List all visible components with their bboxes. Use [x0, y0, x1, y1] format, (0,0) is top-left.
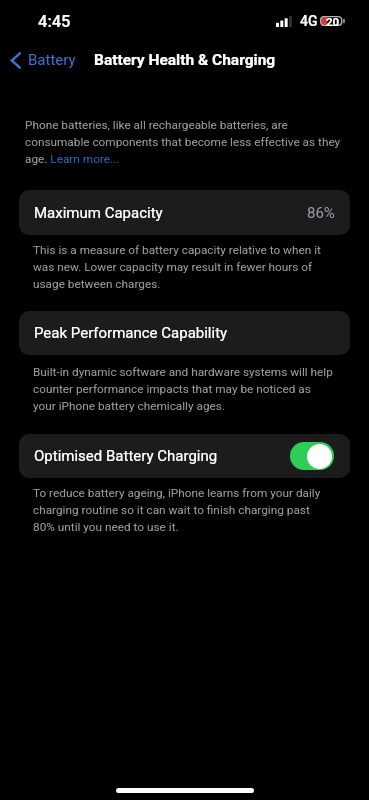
- button[interactable]: Optimised Battery Charging: [290, 442, 334, 470]
- staticText: Optimised Battery Charging: [34, 447, 218, 465]
- button[interactable]: Maximum Capacity: [19, 190, 350, 235]
- button[interactable]: Optimised Battery Charging: [19, 434, 350, 478]
- staticText: Maximum Capacity: [34, 204, 163, 222]
- button[interactable]: Battery: [8, 48, 78, 72]
- staticText: 4G: [300, 13, 318, 29]
- staticText: Built-in dynamic software and hardware s…: [33, 362, 334, 413]
- staticText: This is a measure of battery capacity re…: [33, 240, 334, 291]
- staticText: Phone batteries, like all rechargeable b…: [25, 115, 344, 166]
- staticText: Peak Performance Capability: [34, 324, 228, 342]
- staticText: 86%: [307, 204, 335, 222]
- staticText: To reduce battery ageing, iPhone learns …: [33, 483, 334, 534]
- staticText: 4:45: [38, 12, 71, 31]
- staticText: Battery Health & Charging: [94, 51, 276, 69]
- staticText: 20: [326, 15, 340, 28]
- staticText: Battery: [28, 51, 76, 69]
- button[interactable]: Peak Performance Capability: [19, 311, 350, 355]
